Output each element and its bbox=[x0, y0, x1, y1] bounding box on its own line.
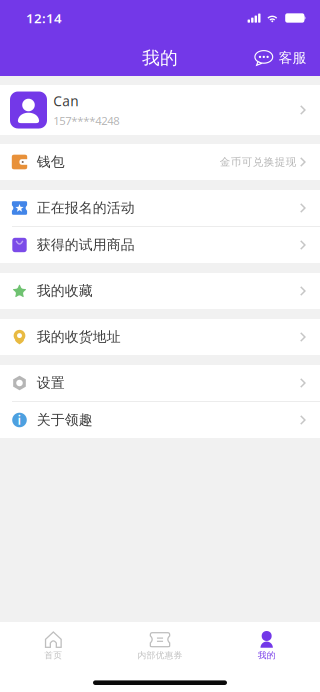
staticText: 我的收藏 bbox=[37, 282, 93, 300]
staticText: 钱包 bbox=[37, 153, 65, 171]
button[interactable]: 获得的试用商品 bbox=[0, 227, 320, 263]
button[interactable]: 我的收货地址 bbox=[0, 319, 320, 355]
staticText: 正在报名的活动 bbox=[37, 199, 135, 217]
staticText: 内部优惠券 bbox=[137, 650, 182, 661]
button[interactable]: 客服 bbox=[254, 45, 320, 67]
staticText: 我的收货地址 bbox=[37, 328, 121, 346]
button[interactable]: 我的 bbox=[213, 622, 320, 668]
button[interactable]: i bbox=[0, 402, 320, 438]
staticText: i bbox=[17, 411, 21, 428]
staticText: 获得的试用商品 bbox=[37, 236, 135, 254]
button[interactable]: 钱包 bbox=[0, 144, 320, 180]
staticText: 我的 bbox=[258, 650, 276, 661]
staticText: 关于领趣 bbox=[37, 411, 93, 429]
button[interactable]: 正在报名的活动 bbox=[0, 190, 320, 226]
button[interactable]: 我的收藏 bbox=[0, 273, 320, 309]
button[interactable]: 首页 bbox=[0, 622, 107, 668]
button[interactable]: 内部优惠券 bbox=[107, 622, 213, 668]
staticText: 157****4248 bbox=[53, 113, 119, 128]
staticText: 客服 bbox=[278, 49, 306, 67]
staticText: 12:14 bbox=[26, 9, 62, 27]
staticText: 设置 bbox=[37, 374, 65, 392]
button[interactable]: 设置 bbox=[0, 365, 320, 401]
staticText: 首页 bbox=[44, 650, 62, 661]
button[interactable]: Can bbox=[0, 85, 320, 135]
staticText: 金币可兑换提现 bbox=[220, 155, 297, 169]
staticText: 我的 bbox=[142, 47, 178, 69]
staticText: Can bbox=[53, 92, 78, 110]
